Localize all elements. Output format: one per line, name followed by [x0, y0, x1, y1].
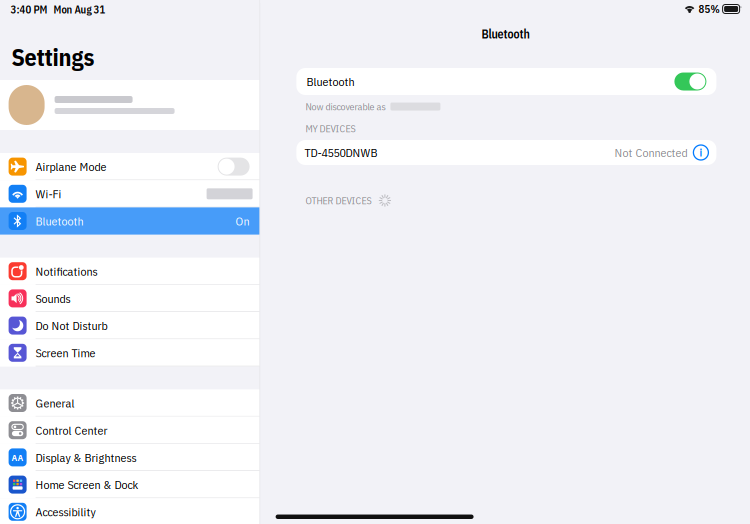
- button[interactable]: Notifications: [0, 258, 260, 285]
- button[interactable]: Do Not Disturb: [0, 312, 260, 339]
- button[interactable]: Airplane Mode: [0, 153, 260, 180]
- staticText: Wi-Fi: [36, 186, 62, 202]
- staticText: Mon Aug 31: [54, 3, 106, 16]
- staticText: 85%: [699, 2, 720, 16]
- staticText: Do Not Disturb: [36, 318, 108, 333]
- button[interactable]: AA: [0, 444, 260, 471]
- staticText: Bluetooth: [36, 213, 84, 229]
- staticText: Display & Brightness: [36, 450, 137, 465]
- staticText: Airplane Mode: [36, 159, 107, 174]
- staticText: Control Center: [36, 422, 108, 438]
- button[interactable]: Screen Time: [0, 339, 260, 366]
- button[interactable]: [0, 80, 260, 130]
- staticText: Now discoverable as: [305, 100, 385, 113]
- staticText: Notifications: [36, 263, 98, 279]
- button[interactable]: Accessibility: [0, 498, 260, 524]
- button[interactable]: Bluetooth: [0, 207, 260, 235]
- staticText: Accessibility: [36, 504, 96, 520]
- button[interactable]: Control Center: [0, 417, 260, 444]
- button[interactable]: More info: [692, 144, 709, 161]
- staticText: OTHER DEVICES: [305, 194, 371, 207]
- staticText: Not Connected: [614, 145, 687, 160]
- staticText: Settings: [12, 41, 95, 73]
- staticText: 3:40 PM: [11, 3, 48, 16]
- staticText: Bluetooth: [306, 74, 354, 89]
- staticText: AA: [12, 451, 24, 463]
- button[interactable]: Wi-Fi: [0, 180, 260, 207]
- staticText: General: [36, 395, 75, 411]
- button[interactable]: General: [0, 389, 260, 417]
- staticText: Screen Time: [36, 345, 96, 361]
- staticText: On: [236, 213, 250, 229]
- staticText: Sounds: [36, 291, 71, 306]
- staticText: i: [699, 146, 702, 159]
- staticText: Home Screen & Dock: [36, 477, 139, 492]
- staticText: MY DEVICES: [305, 122, 355, 135]
- staticText: TD-4550DNWB: [304, 145, 377, 160]
- button[interactable]: Home Screen & Dock: [0, 471, 260, 498]
- button[interactable]: Sounds: [0, 285, 260, 312]
- staticText: Bluetooth: [481, 26, 529, 42]
